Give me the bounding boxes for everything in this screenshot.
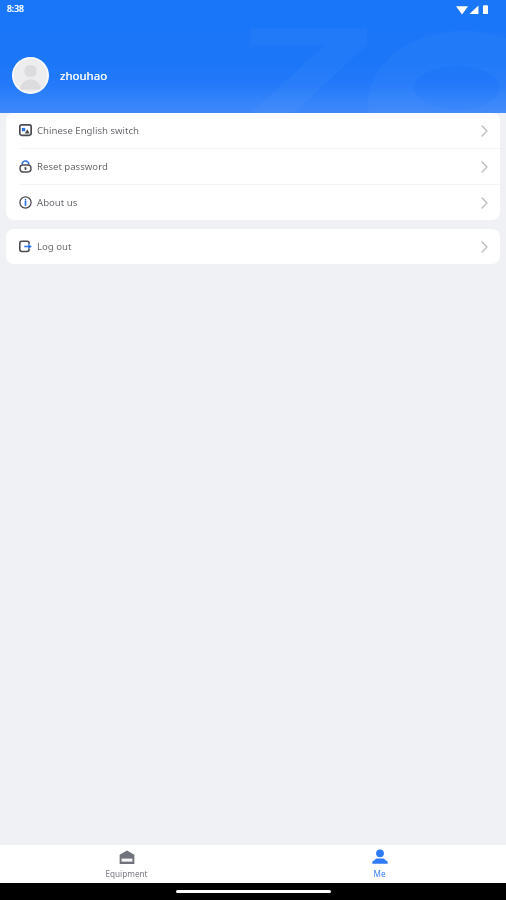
button[interactable]: Me <box>253 845 506 883</box>
button[interactable]: Profile <box>0 38 506 113</box>
button[interactable]: Reset password <box>6 149 500 184</box>
button[interactable]: About us <box>6 185 500 220</box>
staticText: zhouhao <box>60 68 108 84</box>
staticText: Reset password <box>37 160 108 173</box>
staticText: About us <box>37 196 78 209</box>
button[interactable]: Chinese English switch <box>6 113 500 148</box>
staticText: Me <box>373 868 386 879</box>
staticText: Log out <box>37 240 72 253</box>
staticText: 8:38 <box>7 3 24 15</box>
staticText: Equipment <box>105 868 148 879</box>
button[interactable]: Equipment <box>0 845 253 883</box>
staticText: Chinese English switch <box>37 124 140 137</box>
button[interactable]: Log out <box>6 229 500 264</box>
